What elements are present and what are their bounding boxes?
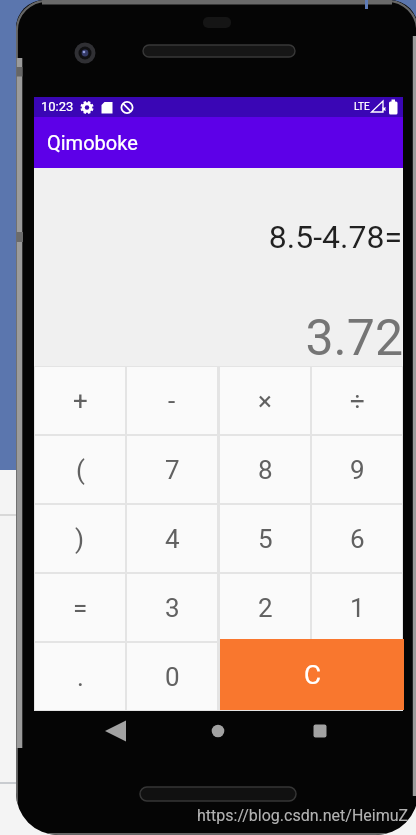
staticText: . [77,662,84,692]
staticText: C [304,660,321,690]
button[interactable]: 5 [220,505,310,572]
button[interactable]: 0 [127,643,217,710]
staticText: 4 [165,524,180,554]
staticText: 7 [165,455,180,485]
staticText: 0 [165,662,180,692]
button[interactable]: ) [35,505,125,572]
button[interactable]: 8 [220,436,310,503]
staticText: 1 [350,593,365,623]
staticText: ) [75,524,85,554]
staticText: ÷ [350,386,365,416]
staticText: Qimoboke [47,131,138,154]
button[interactable]: 9 [312,436,402,503]
button[interactable]: 3 [127,574,217,641]
button[interactable]: × [220,367,310,434]
button[interactable]: 1 [312,574,402,641]
button[interactable]: - [127,367,217,434]
button[interactable]: C [220,639,404,710]
staticText: 3 [165,593,180,623]
staticText: = [73,593,88,623]
staticText: 8.5-4.78= [34,218,402,256]
button[interactable]: ( [35,436,125,503]
staticText: 9 [350,455,365,485]
staticText: https://blog.csdn.net/HeimuZ [197,806,409,825]
button[interactable]: 6 [312,505,402,572]
staticText: × [258,386,272,416]
button[interactable]: + [35,367,125,434]
staticText: 8 [258,455,273,485]
staticText: - [168,386,176,416]
button[interactable]: ÷ [312,367,402,434]
staticText: 6 [350,524,365,554]
button[interactable]: 7 [127,436,217,503]
button[interactable]: . [35,643,125,710]
button[interactable]: 2 [220,574,310,641]
staticText: 5 [258,524,273,554]
staticText: 10:23 [41,99,74,114]
button[interactable]: 4 [127,505,217,572]
button[interactable]: = [35,574,125,641]
staticText: + [73,386,88,416]
staticText: LTE [354,101,370,113]
staticText: 3.72 [34,309,403,368]
staticText: ( [76,455,85,485]
staticText: 2 [258,593,273,623]
